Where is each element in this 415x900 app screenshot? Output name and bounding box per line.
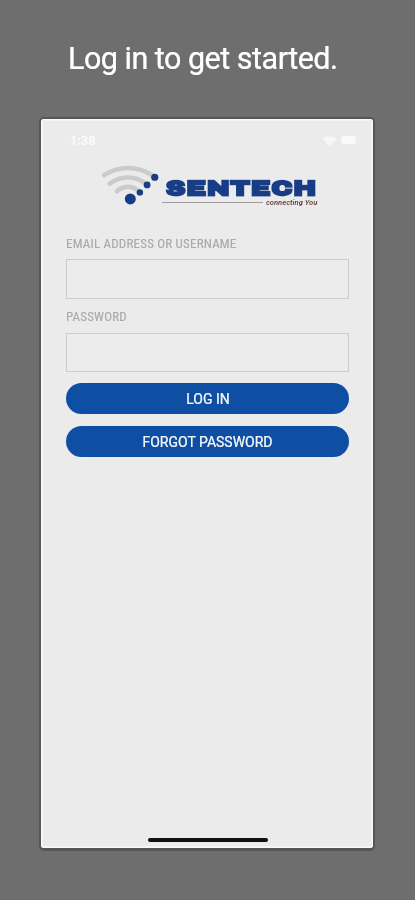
staticText: 1:38 <box>70 133 96 148</box>
button[interactable]: FORGOT PASSWORD <box>66 426 349 457</box>
staticText: Log in to get started. <box>68 41 338 77</box>
staticText: FORGOT PASSWORD <box>142 434 273 450</box>
staticText: SENTECH <box>165 177 317 201</box>
button[interactable] <box>66 333 349 372</box>
staticText: LOG IN <box>186 391 230 407</box>
button[interactable]: LOG IN <box>66 383 349 414</box>
button[interactable] <box>66 259 349 299</box>
staticText: EMAIL ADDRESS OR USERNAME <box>66 236 237 251</box>
staticText: PASSWORD <box>66 309 127 324</box>
other: Wi-Fi <box>322 136 337 147</box>
staticText: connecting You <box>266 198 318 207</box>
